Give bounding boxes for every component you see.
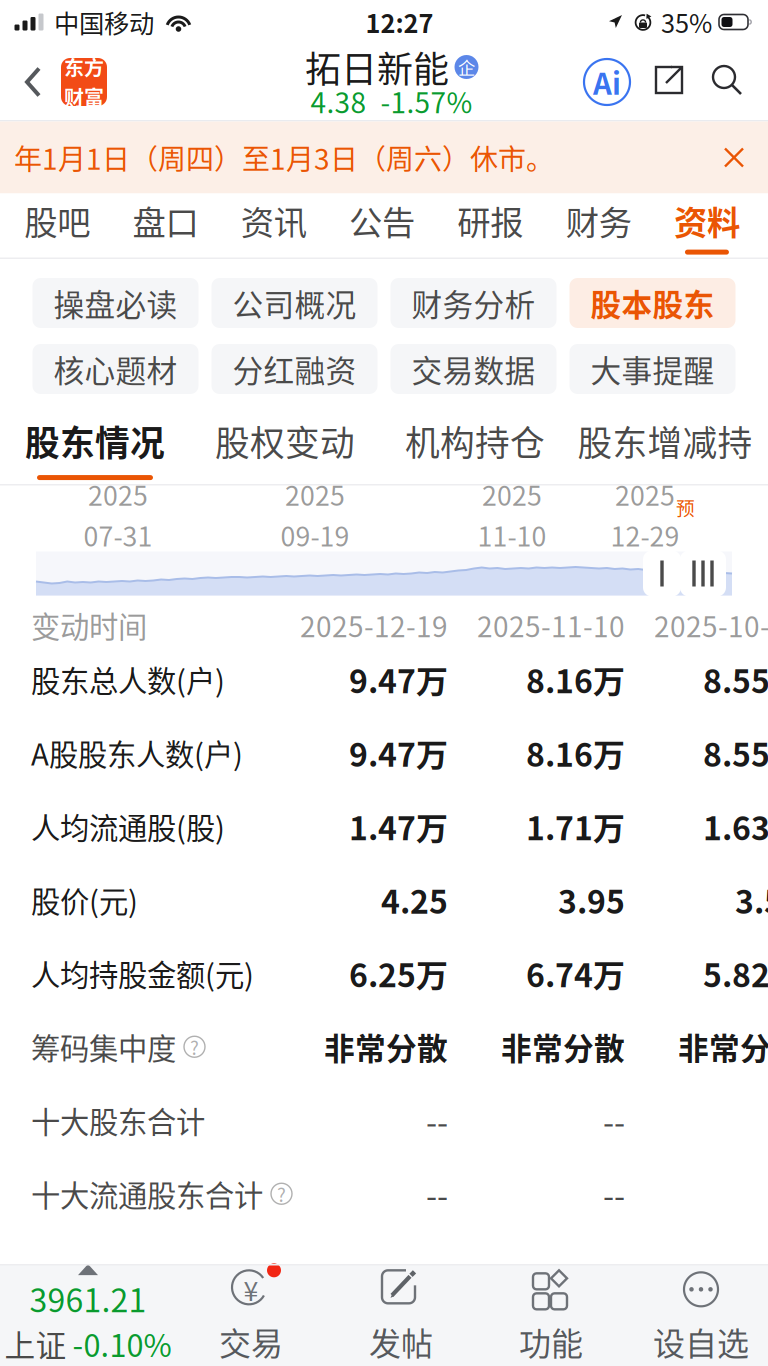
button[interactable]: ¥ xyxy=(176,1264,326,1366)
button[interactable]: 分享 xyxy=(652,63,690,101)
staticText: 公告 xyxy=(349,196,415,245)
staticText: 变动时间 xyxy=(31,604,147,646)
staticText: 研报 xyxy=(457,196,523,245)
staticText: 财务分析 xyxy=(411,281,535,325)
staticText: 财富 xyxy=(64,82,104,111)
staticText: -- xyxy=(426,1097,448,1143)
staticText: 9.47万 xyxy=(349,730,448,776)
staticText: 4.25 xyxy=(381,877,448,923)
button[interactable]: 交易数据 xyxy=(390,344,556,394)
staticText: 35% xyxy=(661,4,712,40)
staticText: ? xyxy=(277,1180,286,1207)
staticText: -1.57% xyxy=(380,81,472,121)
staticText: 8.55万 xyxy=(703,656,768,702)
staticText: 股本股东 xyxy=(590,281,714,325)
staticText: 股东增减持 xyxy=(577,416,752,466)
staticText: 核心题材 xyxy=(53,347,177,391)
button[interactable]: 搜索 xyxy=(710,63,748,101)
staticText: 1.63万 xyxy=(703,803,768,849)
staticText: 东方 xyxy=(64,52,104,81)
staticText: 4.38 xyxy=(310,81,366,121)
button[interactable]: 3961.21 xyxy=(0,1264,176,1366)
staticText: 年1月1日（周四）至1月3日（周六）休市。 xyxy=(14,137,554,178)
staticText: 筹码集中度 xyxy=(31,1025,176,1068)
staticText: 12:27 xyxy=(365,4,433,40)
staticText: 盘口 xyxy=(132,196,198,245)
button[interactable]: 财务分析 xyxy=(390,278,556,328)
staticText: 股吧 xyxy=(24,196,90,245)
staticText: 11-10 xyxy=(477,515,546,554)
button[interactable]: 设自选 xyxy=(626,1264,768,1366)
button[interactable]: 股吧 xyxy=(3,193,111,257)
staticText: 机构持仓 xyxy=(405,416,545,466)
staticText: 3.52 xyxy=(735,877,768,923)
staticText: 上证 xyxy=(4,1321,66,1366)
button[interactable]: 关闭公告 xyxy=(700,121,768,193)
staticText: 股权变动 xyxy=(215,416,355,466)
staticText: 07-31 xyxy=(83,515,152,554)
staticText: 5.82万 xyxy=(703,950,768,996)
staticText: 股价(元) xyxy=(31,878,138,921)
staticText: 2025-12-19 xyxy=(300,605,448,645)
staticText: ¥ xyxy=(243,1270,258,1309)
button[interactable]: 分红融资 xyxy=(211,344,377,394)
staticText: 中国移动 xyxy=(54,4,154,40)
staticText: 6.25万 xyxy=(349,950,448,996)
staticText: 大事提醒 xyxy=(590,347,714,391)
staticText: 公司概况 xyxy=(232,281,356,325)
staticText: 股东情况 xyxy=(25,416,165,466)
staticText: 2025 xyxy=(88,475,148,513)
staticText: 2025 xyxy=(482,475,542,513)
button[interactable]: 核心题材 xyxy=(32,344,198,394)
staticText: 09-19 xyxy=(280,515,349,554)
staticText: 资讯 xyxy=(241,196,307,245)
staticText: 1.47万 xyxy=(349,803,448,849)
button[interactable]: 股东情况 xyxy=(0,412,190,484)
staticText: 设自选 xyxy=(653,1318,749,1365)
button[interactable]: 单列视图 xyxy=(643,550,681,596)
staticText: ? xyxy=(190,1033,199,1060)
staticText: 非常分散 xyxy=(324,1024,448,1069)
button[interactable]: 公告 xyxy=(328,193,436,257)
staticText: 非常分散 xyxy=(501,1024,625,1069)
staticText: 2025 xyxy=(615,475,675,513)
button[interactable]: 资料 xyxy=(653,193,761,257)
button[interactable]: 股权变动 xyxy=(190,412,380,484)
button[interactable]: 功能 xyxy=(476,1264,626,1366)
button[interactable]: 大事提醒 xyxy=(569,344,735,394)
staticText: 功能 xyxy=(519,1318,583,1365)
staticText: 6.74万 xyxy=(526,950,625,996)
staticText: 非常分散 xyxy=(678,1024,768,1069)
staticText: 预 xyxy=(676,493,695,520)
staticText: -- xyxy=(426,1171,448,1217)
button[interactable]: 机构持仓 xyxy=(380,412,570,484)
staticText: -0.10% xyxy=(72,1321,171,1366)
button[interactable]: 资讯 xyxy=(220,193,328,257)
staticText: 12-29 xyxy=(610,515,679,554)
staticText: 人均持股金额(元) xyxy=(31,952,254,994)
staticText: 拓日新能 xyxy=(305,41,449,93)
button[interactable]: 股本股东 xyxy=(569,278,735,328)
button[interactable]: 返回 xyxy=(0,44,121,120)
button[interactable]: AI 助手 xyxy=(582,57,632,107)
staticText: 财务 xyxy=(566,196,632,245)
button[interactable]: 研报 xyxy=(436,193,544,257)
staticText: 十大流通股东合计 xyxy=(31,1172,263,1215)
staticText: -- xyxy=(603,1097,625,1143)
button[interactable]: 操盘必读 xyxy=(32,278,198,328)
button[interactable]: 财务 xyxy=(544,193,653,257)
staticText: Ai xyxy=(593,61,621,103)
button[interactable]: 公司概况 xyxy=(211,278,377,328)
staticText: 发帖 xyxy=(369,1318,433,1365)
button[interactable]: 三列视图 xyxy=(680,550,726,596)
staticText: 9.47万 xyxy=(349,656,448,702)
button[interactable]: 盘口 xyxy=(111,193,220,257)
button[interactable]: 股东增减持 xyxy=(570,412,760,484)
staticText: 2025-10-28 xyxy=(654,605,768,645)
staticText: 资料 xyxy=(674,196,740,245)
staticText: 分红融资 xyxy=(232,347,356,391)
staticText: A股股东人数(户) xyxy=(31,731,243,774)
button[interactable]: 发帖 xyxy=(326,1264,476,1366)
staticText: 8.55万 xyxy=(703,730,768,776)
staticText: 股东总人数(户) xyxy=(31,658,225,700)
